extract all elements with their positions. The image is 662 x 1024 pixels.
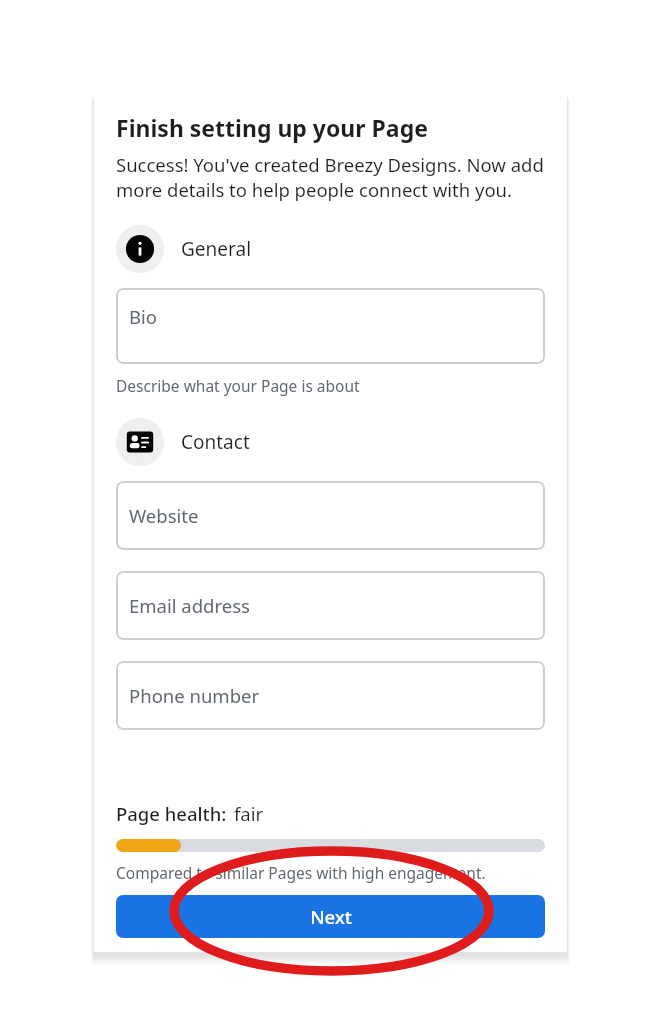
staticText: Contact <box>181 429 250 455</box>
staticText: Finish setting up your Page <box>116 112 428 143</box>
button[interactable]: Email address <box>116 571 545 640</box>
staticText: Website <box>129 503 199 528</box>
button[interactable]: Contact <box>116 418 545 466</box>
other: General <box>116 225 164 273</box>
staticText: Compared to similar Pages with high enga… <box>116 862 486 883</box>
button[interactable]: Bio <box>116 288 545 364</box>
button[interactable]: General <box>116 225 545 273</box>
staticText: Phone number <box>129 683 260 708</box>
staticText: Page health: <box>116 801 227 826</box>
staticText: Bio <box>129 304 157 329</box>
staticText: fair <box>234 801 264 826</box>
button[interactable]: Next <box>116 895 545 938</box>
staticText: Next <box>310 904 352 929</box>
staticText: General <box>181 236 252 262</box>
staticText: Success! You've created Breezy Designs. … <box>116 152 545 203</box>
button[interactable]: Phone number <box>116 661 545 730</box>
other: Contact <box>116 418 164 466</box>
staticText: Describe what your Page is about <box>116 375 360 396</box>
button[interactable]: Website <box>116 481 545 550</box>
staticText: Email address <box>129 593 250 618</box>
